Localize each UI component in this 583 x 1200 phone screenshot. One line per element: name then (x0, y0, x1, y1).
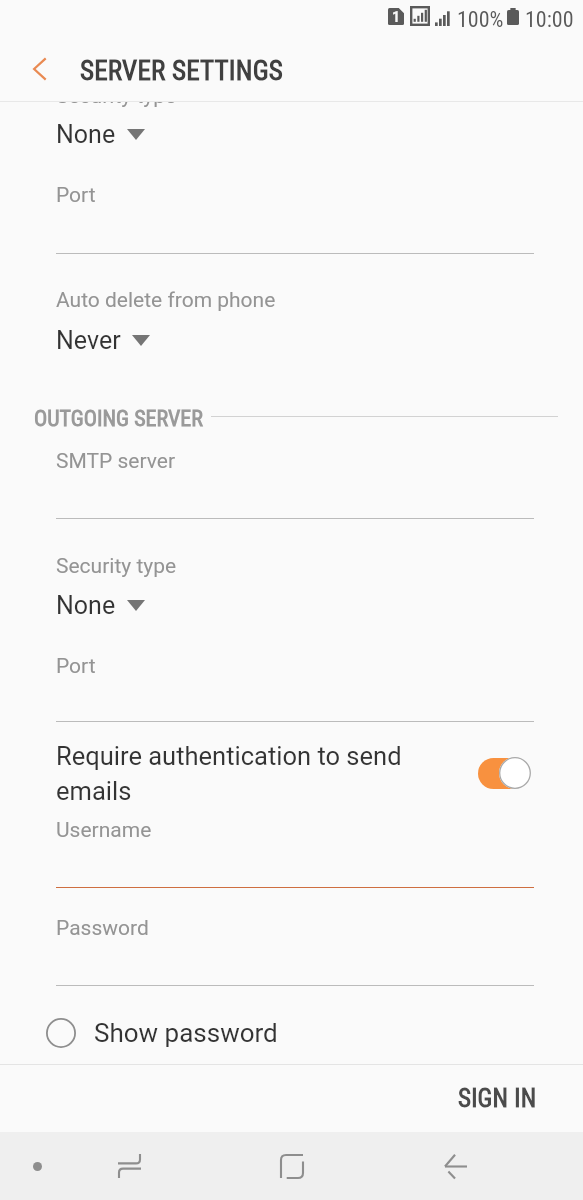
staticText: SIGN IN (458, 1084, 537, 1113)
staticText: SERVER SETTINGS (80, 55, 284, 87)
staticText: Never (56, 326, 121, 355)
button[interactable]: Recent apps (95, 1132, 163, 1200)
staticText: Auto delete from phone (56, 288, 276, 313)
staticText: Require authentication to send emails (56, 741, 416, 806)
staticText: 100% (457, 7, 504, 33)
button[interactable]: None (56, 591, 145, 620)
staticText: Username (56, 818, 152, 843)
button[interactable]: Home (258, 1132, 326, 1200)
staticText: 1 (392, 9, 401, 25)
button[interactable]: Navigate up (16, 46, 62, 92)
staticText: Password (56, 916, 149, 941)
button[interactable]: SIGN IN (458, 1084, 537, 1113)
button[interactable]: Show password (38, 1008, 320, 1057)
staticText: Security type (56, 84, 177, 109)
staticText: SMTP server (56, 449, 176, 474)
staticText: None (56, 120, 116, 149)
button[interactable]: Show keyboard (3, 1132, 71, 1200)
staticText: Port (56, 183, 96, 208)
staticText: 10:00 (525, 7, 574, 33)
button[interactable]: Require authentication to send emails (475, 755, 533, 791)
staticText: Port (56, 654, 96, 679)
staticText: Show password (94, 1018, 278, 1048)
staticText: None (56, 591, 116, 620)
button[interactable]: Back (421, 1132, 489, 1200)
staticText: Security type (56, 554, 177, 579)
button[interactable]: Never (56, 326, 150, 355)
staticText: OUTGOING SERVER (34, 406, 203, 432)
button[interactable]: None (56, 120, 145, 149)
